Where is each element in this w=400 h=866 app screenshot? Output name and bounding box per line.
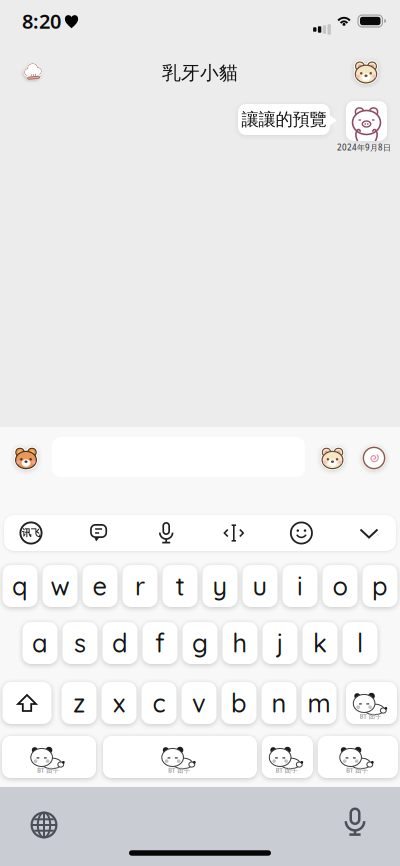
staticText: BT 团子 <box>358 713 382 722</box>
button[interactable]: l <box>342 622 377 664</box>
staticText: BT 团子 <box>345 767 369 776</box>
staticText: 讓讓的預覽 <box>241 109 326 130</box>
button[interactable]: p <box>362 565 397 607</box>
staticText: p <box>372 570 388 602</box>
button[interactable]: v <box>181 682 216 724</box>
staticText: z <box>73 687 85 719</box>
button[interactable]: s <box>62 622 97 664</box>
button[interactable]: m <box>301 682 336 724</box>
staticText: h <box>232 627 247 659</box>
button[interactable]: 空格 <box>103 736 257 778</box>
staticText: t <box>175 570 184 602</box>
button[interactable]: c <box>141 682 176 724</box>
button[interactable]: 聽寫 <box>341 807 369 837</box>
button[interactable]: t <box>162 565 197 607</box>
button[interactable]: w <box>42 565 77 607</box>
staticText: f <box>155 627 165 659</box>
staticText: y <box>212 570 227 602</box>
staticText: 2024年9月8日 <box>337 142 391 153</box>
button[interactable]: y <box>202 565 237 607</box>
staticText: l <box>357 627 363 659</box>
button[interactable]: b <box>221 682 256 724</box>
staticText: g <box>192 627 208 659</box>
staticText: o <box>332 570 347 602</box>
staticText: 乳牙小貓 <box>162 61 238 84</box>
button[interactable]: j <box>262 622 297 664</box>
button[interactable]: i <box>282 565 317 607</box>
staticText: a <box>32 627 48 659</box>
staticText: c <box>152 687 165 719</box>
button[interactable]: 設定 <box>351 58 381 86</box>
staticText: e <box>92 570 107 602</box>
staticText: s <box>74 627 86 659</box>
staticText: 8:20 <box>22 8 61 34</box>
button[interactable]: 語音輸入 <box>153 520 179 546</box>
button[interactable]: 相機 <box>11 444 41 472</box>
staticText: d <box>112 627 128 659</box>
button[interactable]: 送出 <box>318 736 398 778</box>
button[interactable]: 表情符號 <box>288 520 314 546</box>
button[interactable]: k <box>302 622 337 664</box>
button[interactable]: e <box>82 565 117 607</box>
button[interactable]: Shift <box>2 682 51 724</box>
button[interactable]: q <box>2 565 37 607</box>
staticText: r <box>135 570 145 602</box>
button[interactable]: r <box>122 565 157 607</box>
button[interactable]: 游標 <box>221 520 247 546</box>
button[interactable]: 文字預測 <box>86 520 112 546</box>
button[interactable]: g <box>182 622 217 664</box>
button[interactable]: 換行 <box>262 736 313 778</box>
staticText: i <box>297 570 303 602</box>
staticText: k <box>313 627 327 659</box>
staticText: q <box>12 570 28 602</box>
button[interactable]: 收合鍵盤 <box>356 520 382 546</box>
button[interactable]: x <box>101 682 136 724</box>
button[interactable]: 語音訊息 <box>360 444 387 471</box>
button[interactable]: 123 <box>2 736 96 778</box>
button[interactable]: f <box>142 622 177 664</box>
staticText: x <box>113 687 125 719</box>
button[interactable]: o <box>322 565 357 607</box>
staticText: w <box>50 570 69 602</box>
staticText: b <box>231 687 247 719</box>
staticText: u <box>252 570 267 602</box>
staticText: n <box>271 687 286 719</box>
button[interactable]: h <box>222 622 257 664</box>
staticText: m <box>307 687 330 719</box>
staticText: BT 团子 <box>274 767 298 776</box>
button[interactable]: z <box>61 682 96 724</box>
button[interactable]: 切換鍵盤 <box>30 811 58 839</box>
staticText: v <box>192 687 206 719</box>
button[interactable]: 選單 <box>19 58 47 85</box>
button[interactable]: n <box>261 682 296 724</box>
button[interactable]: 輸入法 <box>18 520 44 546</box>
staticText: j <box>276 627 283 659</box>
staticText: BT 团子 <box>36 767 60 776</box>
button[interactable]: a <box>22 622 57 664</box>
button[interactable]: d <box>102 622 137 664</box>
staticText: 讯飞 <box>22 527 40 539</box>
button[interactable]: 刪除 <box>346 682 397 724</box>
staticText: BT 团子 <box>167 767 191 776</box>
button[interactable]: u <box>242 565 277 607</box>
button[interactable]: 貼圖 <box>317 444 347 472</box>
